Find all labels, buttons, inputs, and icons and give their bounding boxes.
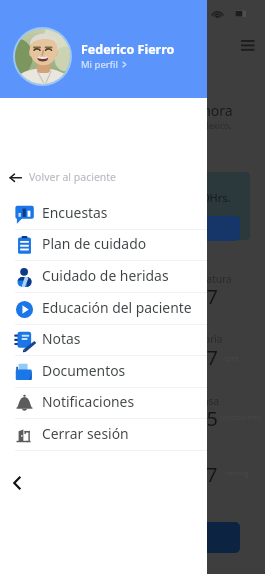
staticText: Plan de cuidado [42,234,147,253]
staticText: Mexico, [201,120,232,132]
staticText: Federico Fierro [81,41,175,58]
staticText: Notas [42,329,81,348]
button[interactable]: Volver al paciente [0,165,117,189]
button[interactable]: Plan de cuidado [0,229,207,261]
staticText: Mi perfil [81,58,118,71]
staticText: Encuestas [42,203,108,222]
button[interactable]: Encuestas [0,198,207,230]
staticText: 00Hrs. [197,190,231,205]
button[interactable]: Documentos [0,356,207,388]
staticText: Temperatura [171,272,232,286]
button[interactable]: Notas [0,324,207,356]
button[interactable]: Cuidado de heridas [0,261,207,293]
staticText: 17 [195,344,218,371]
button[interactable]: Notificaciones [0,387,207,419]
button[interactable]: Cerrar sesión [0,419,207,451]
staticText: 65 [195,405,218,432]
staticText: Cuidado de heridas [42,266,169,285]
staticText: F. respiratoria [158,332,223,346]
staticText: Tensa [192,394,220,408]
staticText: Educación del paciente [42,298,192,317]
staticText: 37 [195,283,218,310]
button[interactable]: Educación del paciente [0,293,207,325]
staticText: Notificaciones [42,392,135,411]
button[interactable]: Back [0,466,34,500]
staticText: Documentos [42,361,126,380]
staticText: Volver al paciente [29,170,117,184]
button[interactable]: Profile photo [13,27,72,86]
staticText: 127 [183,461,218,488]
staticText: Sonora [186,101,233,120]
staticText: Cerrar sesión [42,424,129,443]
button[interactable]: Mi perfil [81,58,128,71]
